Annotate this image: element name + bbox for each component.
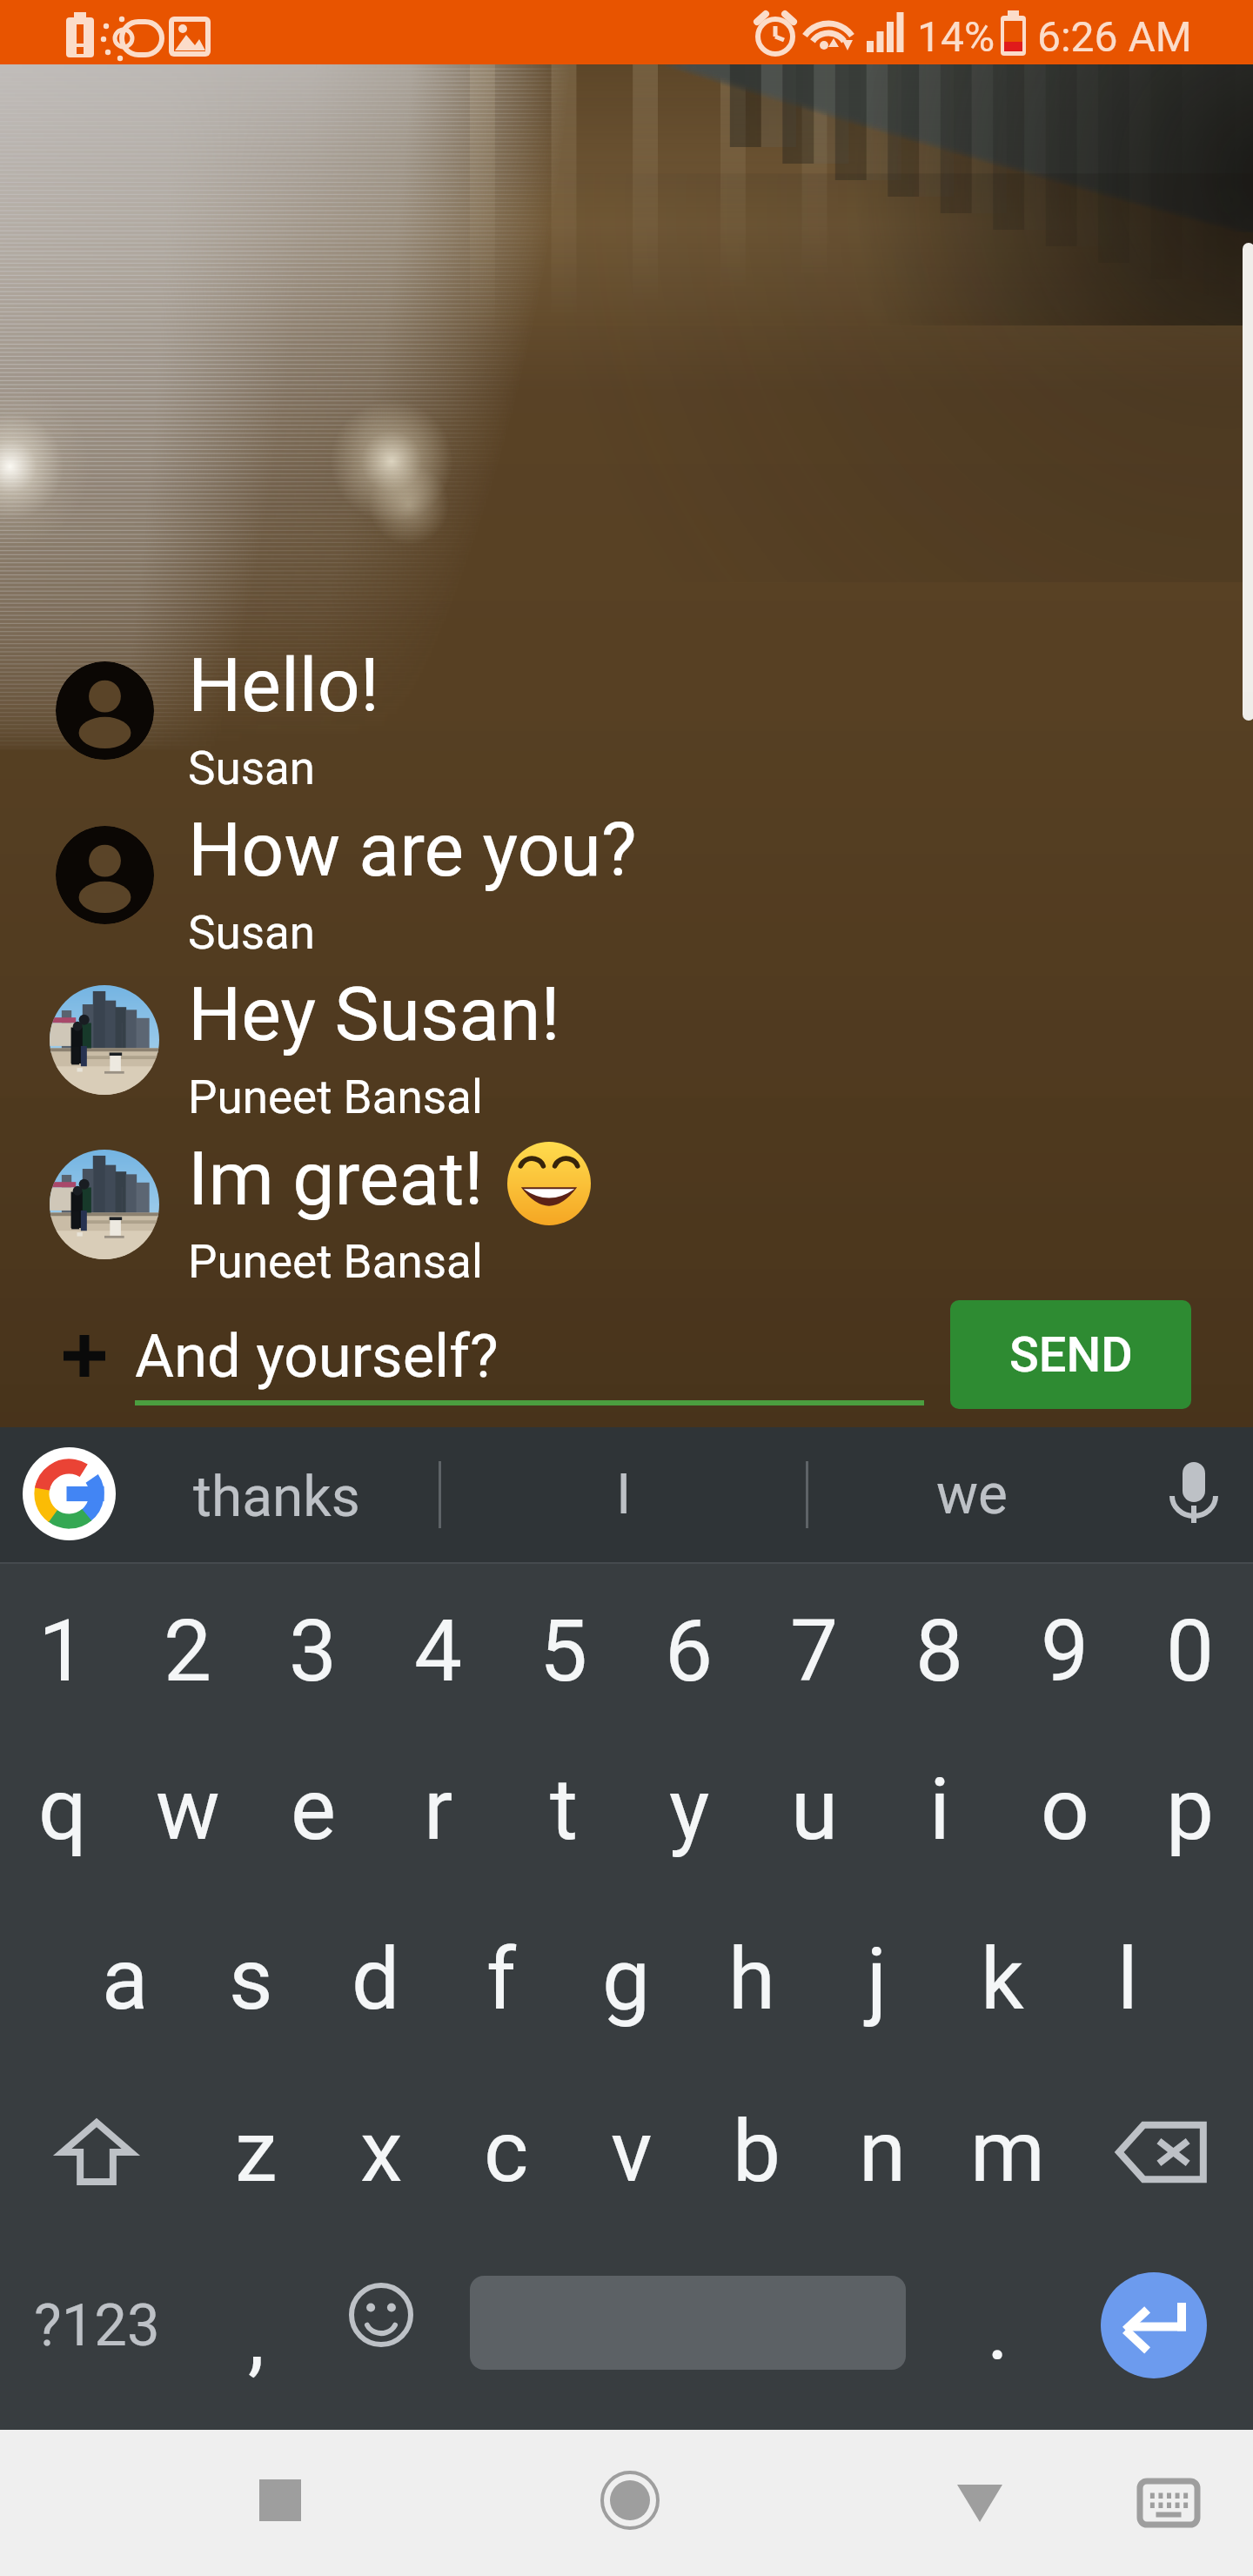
staticText: 1: [38, 1601, 87, 1701]
button[interactable]: h: [689, 1899, 814, 2065]
staticText: h: [728, 1929, 775, 2029]
staticText: t: [550, 1760, 579, 1860]
button[interactable]: thanks: [0, 1427, 439, 1562]
staticText: Puneet Bansal: [188, 1235, 483, 1289]
staticText: ,: [248, 2288, 265, 2386]
button[interactable]: 9: [1002, 1566, 1128, 1733]
button[interactable]: Add attachment: [48, 1319, 121, 1392]
button[interactable]: e: [251, 1733, 376, 1899]
staticText: I: [616, 1462, 632, 1527]
button[interactable]: 4: [376, 1566, 501, 1733]
staticText: Hello!: [188, 641, 379, 729]
button[interactable]: b: [694, 2065, 820, 2231]
staticText: q: [38, 1760, 87, 1860]
button[interactable]: z: [193, 2065, 318, 2231]
button[interactable]: Hey Susan!: [0, 936, 1253, 1100]
staticText: w: [156, 1760, 220, 1860]
button[interactable]: g: [564, 1899, 689, 2065]
staticText: 6:26 AM: [1037, 12, 1192, 61]
staticText: v: [611, 2102, 653, 2202]
staticText: 7: [790, 1601, 839, 1701]
staticText: 9: [1041, 1601, 1089, 1701]
button[interactable]: Shift: [0, 2065, 193, 2231]
staticText: l: [1117, 1929, 1138, 2029]
button[interactable]: q: [0, 1733, 125, 1899]
button[interactable]: Im great!: [0, 1100, 1253, 1265]
button[interactable]: l: [1065, 1899, 1190, 2065]
staticText: f: [486, 1929, 517, 2029]
staticText: d: [352, 1929, 400, 2029]
staticText: n: [859, 2102, 907, 2202]
button[interactable]: 3: [251, 1566, 376, 1733]
button[interactable]: r: [376, 1733, 501, 1899]
staticText: 3: [289, 1601, 338, 1701]
button[interactable]: 1: [0, 1566, 125, 1733]
button[interactable]: w: [125, 1733, 251, 1899]
button[interactable]: p: [1128, 1733, 1253, 1899]
button[interactable]: 6: [626, 1566, 752, 1733]
button[interactable]: u: [752, 1733, 877, 1899]
button[interactable]: Emoji keyboard: [318, 2231, 444, 2398]
staticText: 14%: [917, 12, 995, 61]
button[interactable]: x: [318, 2065, 444, 2231]
staticText: Im great!: [188, 1135, 484, 1223]
button[interactable]: s: [188, 1899, 313, 2065]
button[interactable]: 0: [1128, 1566, 1253, 1733]
button[interactable]: I: [441, 1427, 807, 1562]
button[interactable]: Hide keyboard: [1084, 2430, 1253, 2576]
staticText: g: [602, 1929, 651, 2029]
button[interactable]: v: [569, 2065, 694, 2231]
staticText: a: [102, 1929, 149, 2029]
button[interactable]: SEND: [950, 1300, 1191, 1409]
button[interactable]: y: [626, 1733, 752, 1899]
button[interactable]: Google: [23, 1447, 116, 1540]
staticText: c: [484, 2102, 529, 2202]
staticText: z: [235, 2102, 278, 2202]
button[interactable]: o: [1002, 1733, 1128, 1899]
staticText: 6: [665, 1601, 714, 1701]
button[interactable]: we: [808, 1427, 1136, 1562]
staticText: Puneet Bansal: [188, 1070, 483, 1124]
button[interactable]: Home: [543, 2430, 717, 2576]
button[interactable]: Enter: [1101, 2272, 1207, 2378]
button[interactable]: t: [501, 1733, 626, 1899]
button[interactable]: i: [877, 1733, 1002, 1899]
button[interactable]: f: [439, 1899, 564, 2065]
button[interactable]: a: [63, 1899, 188, 2065]
button[interactable]: n: [820, 2065, 945, 2231]
button[interactable]: Backspace: [1070, 2065, 1253, 2231]
button[interactable]: 2: [125, 1566, 251, 1733]
button[interactable]: 7: [752, 1566, 877, 1733]
staticText: b: [733, 2102, 781, 2202]
button[interactable]: c: [444, 2065, 569, 2231]
button[interactable]: k: [940, 1899, 1065, 2065]
button[interactable]: ,: [193, 2231, 318, 2398]
staticText: 8: [915, 1601, 964, 1701]
button[interactable]: Voice input: [1147, 1427, 1241, 1562]
staticText: y: [669, 1760, 710, 1860]
button[interactable]: m: [945, 2065, 1070, 2231]
button[interactable]: Recent apps: [193, 2430, 367, 2576]
button[interactable]: .: [935, 2231, 1061, 2398]
button[interactable]: Hello!: [0, 607, 1253, 771]
button[interactable]: ?123: [0, 2231, 193, 2398]
staticText: And yourself?: [135, 1321, 499, 1392]
staticText: ?123: [34, 2291, 160, 2360]
staticText: u: [791, 1760, 839, 1860]
staticText: thanks: [193, 1465, 360, 1530]
staticText: 5: [539, 1601, 588, 1701]
staticText: r: [424, 1760, 453, 1860]
staticText: k: [981, 1929, 1024, 2029]
staticText: o: [1041, 1760, 1089, 1860]
staticText: e: [291, 1760, 336, 1860]
button[interactable]: 5: [501, 1566, 626, 1733]
staticText: .: [987, 2281, 1009, 2379]
button[interactable]: Back: [893, 2430, 1067, 2576]
button[interactable]: 8: [877, 1566, 1002, 1733]
button[interactable]: d: [313, 1899, 439, 2065]
staticText: s: [229, 1929, 273, 2029]
button[interactable]: j: [814, 1899, 940, 2065]
staticText: x: [360, 2102, 403, 2202]
button[interactable]: How are you?: [0, 771, 1253, 936]
